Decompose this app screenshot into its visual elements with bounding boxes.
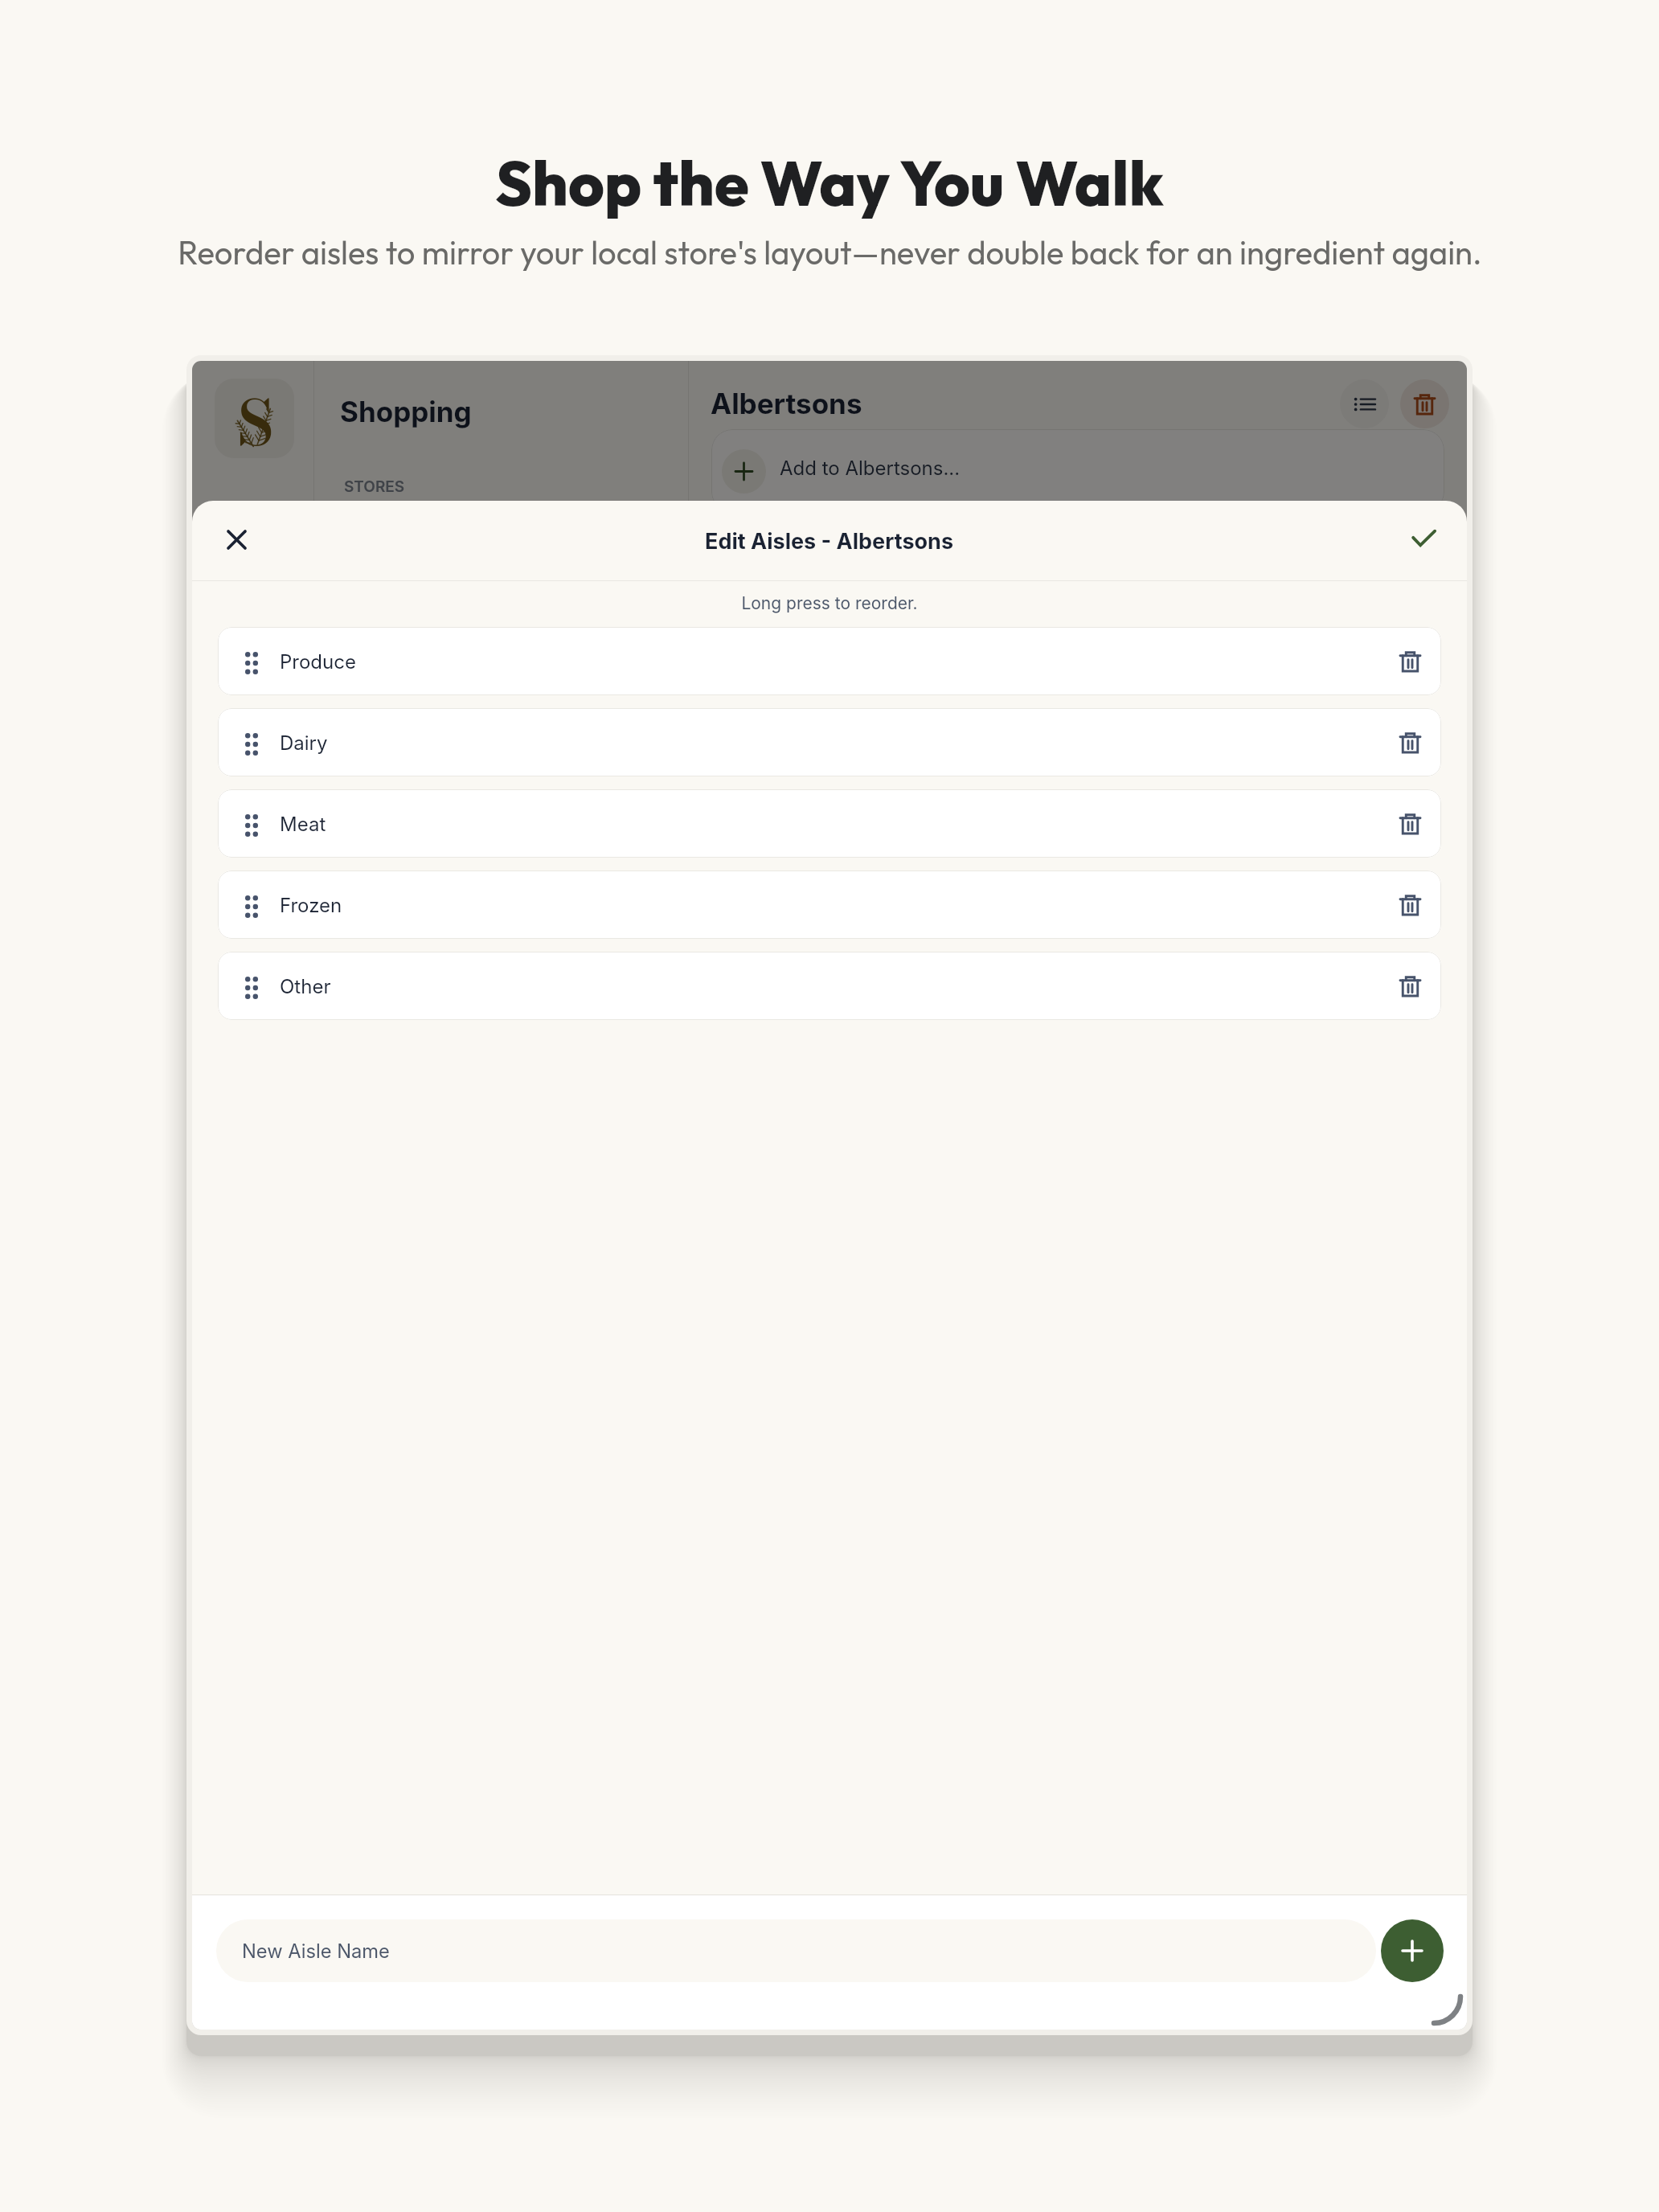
staticText: Shop the Way You Walk (495, 144, 1164, 222)
button[interactable]: Clear list (1400, 379, 1449, 428)
staticText: Add to Albertsons... (780, 457, 961, 480)
staticText: Edit Aisles - Albertsons (705, 528, 954, 555)
button[interactable]: New Aisle Name (216, 1919, 1376, 1982)
staticText: Produce (280, 650, 356, 674)
button[interactable]: Meat (218, 789, 1441, 858)
button[interactable]: Produce (218, 627, 1441, 695)
staticText: Meat (280, 813, 326, 836)
button[interactable]: Frozen (218, 870, 1441, 939)
button[interactable]: Add to Albertsons... (711, 429, 1444, 513)
staticText: S (237, 379, 274, 456)
button[interactable]: Dairy (218, 708, 1441, 776)
staticText: Shopping (340, 395, 472, 428)
button[interactable]: Add aisle (1381, 1919, 1444, 1982)
button[interactable]: Done (1400, 514, 1447, 561)
staticText: Long press to reorder. (192, 593, 1467, 613)
staticText: New Aisle Name (242, 1940, 390, 1963)
staticText: Albertsons (711, 387, 862, 420)
staticText: Frozen (280, 894, 342, 917)
button[interactable]: Delete Produce (1389, 641, 1431, 682)
button[interactable]: Edit aisles (1340, 379, 1389, 428)
button[interactable]: Other (218, 952, 1441, 1020)
button[interactable]: App home (215, 379, 294, 458)
button[interactable]: Close (213, 516, 260, 563)
staticText: STORES (344, 477, 405, 496)
button[interactable]: Delete Meat (1389, 803, 1431, 845)
staticText: Reorder aisles to mirror your local stor… (178, 232, 1482, 272)
button[interactable]: Delete Dairy (1389, 722, 1431, 764)
staticText: Dairy (280, 731, 328, 755)
button[interactable]: Delete Frozen (1389, 884, 1431, 926)
staticText: Other (280, 975, 331, 998)
button[interactable]: Delete Other (1389, 965, 1431, 1007)
